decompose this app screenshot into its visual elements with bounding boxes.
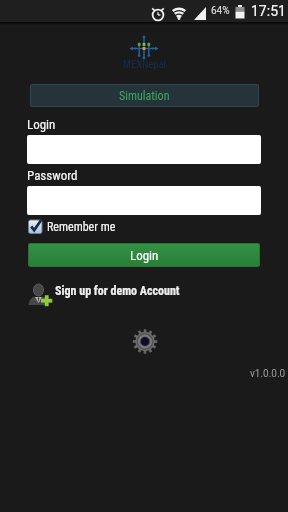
staticText: 17:51	[251, 3, 286, 19]
staticText: Login	[27, 117, 56, 132]
staticText: v1.0.0.0	[250, 368, 286, 380]
button[interactable]: Remember me	[28, 219, 116, 234]
button[interactable]: Sign up for demo Account	[28, 281, 180, 306]
staticText: MEXNepal	[123, 58, 166, 70]
staticText: Sign up for demo Account	[55, 284, 180, 298]
staticText: Remember me	[47, 220, 116, 234]
button[interactable]	[27, 186, 261, 215]
button[interactable]: Login	[28, 243, 260, 267]
staticText: Simulation	[119, 89, 170, 103]
button[interactable]: Simulation	[30, 84, 259, 107]
staticText: 64%	[211, 5, 230, 17]
staticText: Login	[130, 248, 159, 263]
staticText: Password	[27, 168, 78, 183]
button[interactable]	[132, 328, 158, 354]
button[interactable]	[27, 135, 261, 164]
